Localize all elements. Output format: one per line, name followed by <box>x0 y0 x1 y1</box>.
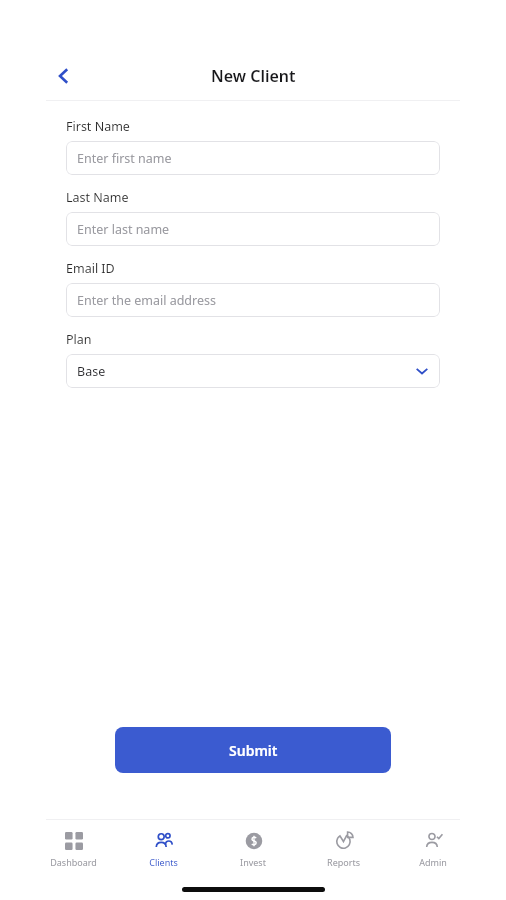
staticText: Admin <box>419 856 447 868</box>
staticText: Last Name <box>66 189 129 206</box>
staticText: First Name <box>66 118 130 135</box>
staticText: Dashboard <box>50 856 97 868</box>
staticText: Reports <box>327 856 360 868</box>
button[interactable]: Base <box>66 354 440 388</box>
button[interactable]: Invest <box>220 826 286 872</box>
staticText: Submit <box>229 741 278 760</box>
button[interactable]: Submit <box>115 727 391 773</box>
button[interactable]: Admin <box>400 826 466 872</box>
button[interactable]: Reports <box>310 826 376 872</box>
staticText: New Client <box>211 65 296 87</box>
staticText: Email ID <box>66 260 115 277</box>
staticText: Invest <box>240 856 266 868</box>
button[interactable]: Dashboard <box>40 826 106 872</box>
staticText: Enter first name <box>77 150 172 167</box>
staticText: Plan <box>66 331 92 348</box>
button[interactable]: Enter the email address <box>66 283 440 317</box>
button[interactable]: Enter last name <box>66 212 440 246</box>
staticText: Enter the email address <box>77 292 216 309</box>
staticText: Clients <box>149 856 178 868</box>
button[interactable]: Clients <box>130 826 196 872</box>
button[interactable]: Enter first name <box>66 141 440 175</box>
staticText: Enter last name <box>77 221 170 238</box>
button[interactable]: Back <box>46 58 82 94</box>
staticText: Base <box>77 363 106 380</box>
